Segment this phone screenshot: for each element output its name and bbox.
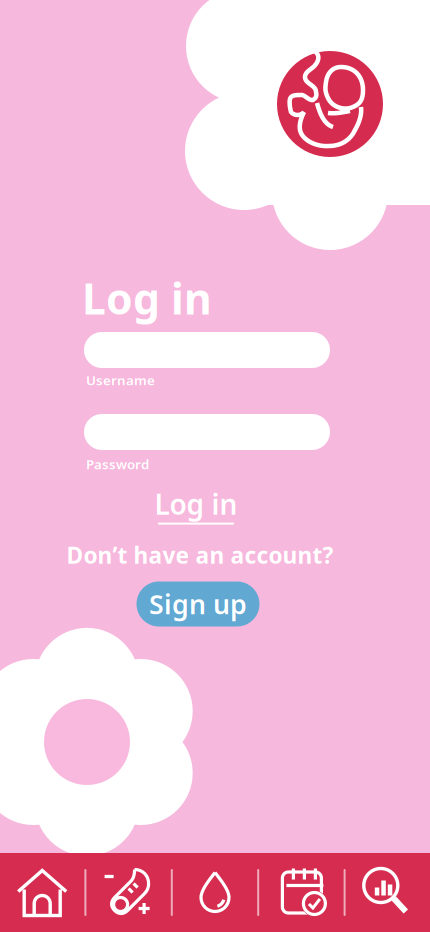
button[interactable]: Temperature — [86, 865, 171, 919]
staticText: Log in — [154, 485, 237, 523]
staticText: Log in — [82, 270, 212, 326]
button[interactable]: Insights — [346, 867, 430, 917]
staticText: Password — [86, 455, 149, 473]
button[interactable]: Home — [0, 866, 84, 918]
staticText: Don’t have an account? — [66, 540, 333, 570]
staticText: Sign up — [149, 586, 247, 622]
button[interactable]: Sign up — [136, 581, 259, 626]
button[interactable]: Period — [173, 867, 257, 917]
button[interactable]: Calendar — [259, 866, 344, 918]
button[interactable]: Log in — [150, 485, 241, 525]
staticText: Username — [86, 371, 155, 389]
